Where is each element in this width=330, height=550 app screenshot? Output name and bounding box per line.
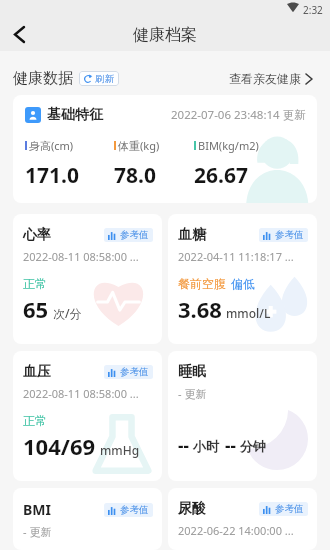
button[interactable]: Back: [0, 18, 38, 51]
button[interactable]: 刷新: [79, 71, 119, 86]
staticText: --: [225, 434, 236, 457]
staticText: 血糖: [178, 226, 206, 244]
staticText: 78.0: [114, 161, 156, 190]
button[interactable]: 睡眠: [168, 351, 317, 481]
staticText: 2022-07-06 23:48:14 更新: [171, 107, 306, 123]
staticText: mmHg: [100, 442, 140, 458]
staticText: 2:32: [303, 3, 323, 17]
staticText: 尿酸: [178, 500, 206, 518]
staticText: 2022-08-11 08:58:00 ...: [23, 386, 139, 401]
staticText: 刷新: [95, 73, 114, 85]
staticText: 171.0: [25, 161, 79, 190]
button[interactable]: 查看亲友健康: [229, 71, 312, 86]
button[interactable]: 血糖: [168, 214, 317, 344]
staticText: 65: [23, 294, 49, 324]
staticText: 2022-06-22 14:00:00 ...: [178, 523, 294, 538]
staticText: 参考值: [120, 504, 149, 516]
staticText: 分钟: [240, 438, 266, 454]
staticText: - 更新: [23, 524, 52, 539]
staticText: 104/69: [23, 431, 96, 461]
staticText: 心率: [23, 226, 51, 244]
button[interactable]: 参考值: [104, 365, 153, 379]
staticText: 正常: [23, 276, 47, 291]
staticText: 26.67: [194, 161, 248, 190]
button[interactable]: 心率: [13, 214, 162, 344]
staticText: 基础特征: [47, 106, 103, 124]
staticText: 参考值: [120, 366, 149, 378]
staticText: 参考值: [275, 229, 304, 241]
staticText: 睡眠: [178, 363, 206, 381]
staticText: 血压: [23, 363, 51, 381]
staticText: 2022-08-11 08:58:00 ...: [23, 249, 139, 264]
button[interactable]: 基础特征: [13, 95, 317, 203]
button[interactable]: BMI: [13, 488, 162, 550]
staticText: 偏低: [231, 276, 255, 291]
staticText: 正常: [23, 413, 47, 428]
staticText: BIM(kg/m2): [198, 138, 259, 153]
staticText: BMI: [23, 500, 51, 519]
staticText: mmol/L: [226, 305, 271, 321]
button[interactable]: 参考值: [104, 503, 153, 517]
staticText: 查看亲友健康: [229, 71, 301, 86]
staticText: 2022-04-11 11:18:17 ...: [178, 249, 294, 264]
staticText: - 更新: [178, 386, 207, 401]
staticText: 体重(kg): [118, 138, 160, 153]
button[interactable]: 参考值: [259, 228, 308, 242]
button[interactable]: 尿酸: [168, 488, 317, 550]
staticText: 健康数据: [13, 69, 73, 88]
staticText: 3.68: [178, 294, 222, 324]
staticText: --: [178, 434, 189, 457]
staticText: 小时: [193, 438, 219, 454]
button[interactable]: 参考值: [259, 502, 308, 516]
staticText: 参考值: [275, 503, 304, 515]
staticText: 健康档案: [133, 25, 197, 45]
staticText: 参考值: [120, 229, 149, 241]
button[interactable]: 参考值: [104, 228, 153, 242]
staticText: 次/分: [53, 305, 82, 321]
button[interactable]: 血压: [13, 351, 162, 481]
staticText: 身高(cm): [29, 138, 74, 153]
staticText: 餐前空腹: [178, 276, 226, 291]
